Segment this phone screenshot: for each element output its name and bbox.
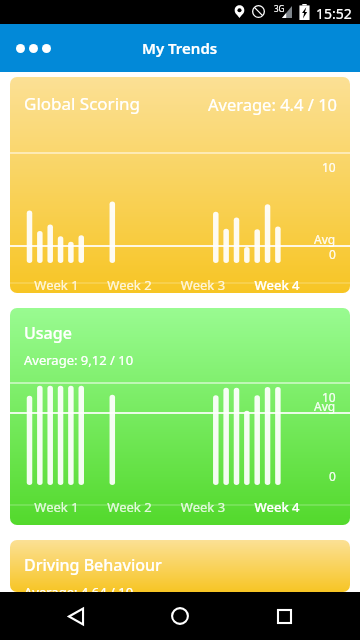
staticText: Week 2 bbox=[93, 498, 166, 516]
staticText: Avg bbox=[314, 398, 336, 414]
staticText: Average: 9,12 / 10 bbox=[24, 351, 134, 369]
staticText: Week 2 bbox=[93, 276, 166, 293]
button[interactable]: Back bbox=[48, 592, 104, 640]
staticText: Week 1 bbox=[20, 498, 93, 516]
staticText: Driving Behaviour bbox=[24, 554, 162, 576]
staticText: Week 3 bbox=[166, 498, 240, 516]
button[interactable]: Home bbox=[152, 592, 208, 640]
staticText: 10 bbox=[322, 389, 336, 405]
staticText: Avg bbox=[314, 231, 336, 247]
staticText: 3G bbox=[274, 3, 285, 14]
staticText: Week 4 bbox=[240, 276, 314, 293]
staticText: Usage bbox=[24, 322, 72, 344]
staticText: 0 bbox=[329, 468, 336, 484]
staticText: Week 4 bbox=[240, 498, 314, 516]
button[interactable]: Recents bbox=[256, 592, 312, 640]
button[interactable]: Driving Behaviour bbox=[10, 540, 350, 592]
button[interactable]: Global Scoring bbox=[10, 77, 350, 293]
staticText: 0 bbox=[329, 246, 336, 262]
staticText: Global Scoring bbox=[24, 92, 140, 115]
staticText: Average: 4.4 / 10 bbox=[208, 93, 338, 115]
staticText: Week 3 bbox=[166, 276, 240, 293]
staticText: Average: 4,64 / 10 bbox=[24, 583, 134, 592]
staticText: Week 1 bbox=[20, 276, 93, 293]
button[interactable]: Menu bbox=[12, 26, 60, 70]
staticText: 15:52 bbox=[316, 4, 352, 23]
button[interactable]: Usage bbox=[10, 308, 350, 525]
staticText: 10 bbox=[322, 159, 336, 175]
staticText: My Trends bbox=[142, 38, 218, 58]
